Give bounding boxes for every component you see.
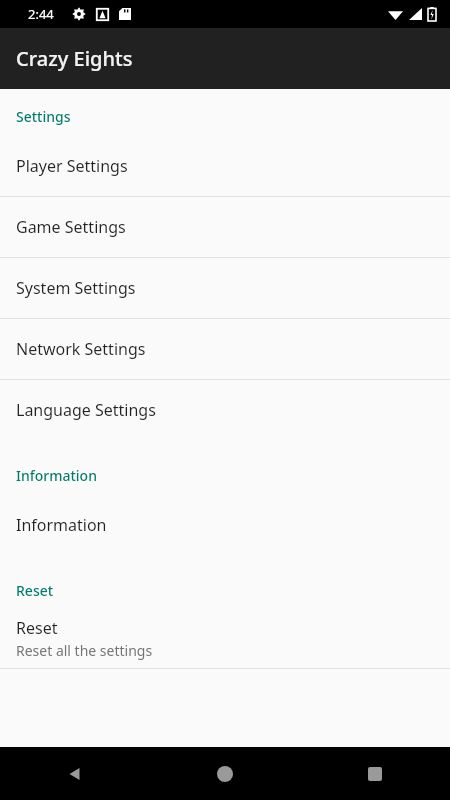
button[interactable]: Network Settings <box>0 319 450 379</box>
button[interactable]: Recent apps <box>300 747 450 800</box>
staticText: 2:44 <box>28 5 54 23</box>
button[interactable]: Language Settings <box>0 380 450 440</box>
staticText: Network Settings <box>16 338 146 360</box>
button[interactable]: Home <box>150 747 300 800</box>
staticText: Game Settings <box>16 216 126 238</box>
staticText: Language Settings <box>16 399 156 421</box>
staticText: Reset <box>16 617 58 639</box>
staticText: Player Settings <box>16 155 128 177</box>
button[interactable]: Reset <box>0 608 450 668</box>
button[interactable]: System Settings <box>0 258 450 318</box>
button[interactable]: Player Settings <box>0 136 450 196</box>
staticText: Settings <box>16 107 71 126</box>
staticText: Reset <box>16 581 54 600</box>
staticText: Reset all the settings <box>16 641 153 660</box>
staticText: Information <box>16 514 107 536</box>
button[interactable]: Back <box>0 747 150 800</box>
button[interactable]: Game Settings <box>0 197 450 257</box>
staticText: Information <box>16 466 97 485</box>
button[interactable]: Information <box>0 495 450 555</box>
staticText: System Settings <box>16 277 136 299</box>
staticText: Crazy Eights <box>16 45 133 72</box>
